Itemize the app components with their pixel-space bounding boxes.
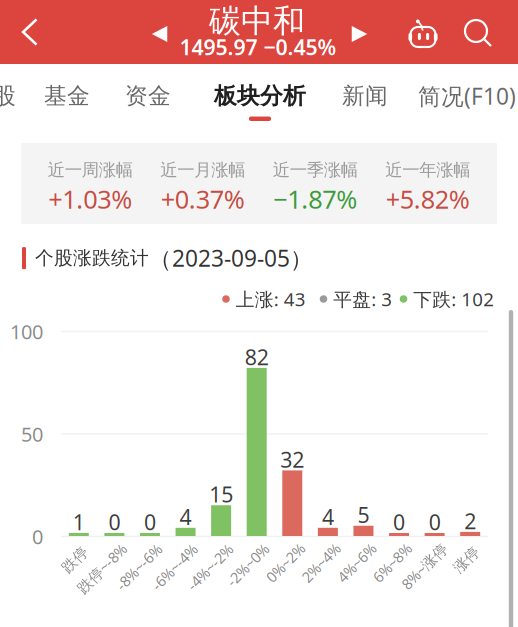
staticText: 下跌: 102 <box>413 287 494 311</box>
staticText: 32 <box>280 445 304 473</box>
staticText: 4%~6% <box>333 553 381 572</box>
staticText: 0 <box>144 508 156 536</box>
staticText: 1 <box>73 508 85 536</box>
staticText: 0 <box>108 508 120 536</box>
staticText: -2%~0% <box>221 555 274 575</box>
staticText: 4 <box>179 503 191 531</box>
button[interactable]: 新闻 <box>342 64 388 128</box>
staticText: 基金 <box>44 82 90 110</box>
button[interactable]: Assistant <box>400 1 446 65</box>
staticText: 简况(F10) <box>418 81 516 111</box>
staticText: 新闻 <box>342 82 388 110</box>
staticText: 0%~2% <box>261 553 309 572</box>
staticText: +5.82% <box>386 182 470 216</box>
staticText: 个股涨跌统计 <box>35 247 149 269</box>
staticText: 6%~8% <box>368 553 416 572</box>
staticText: 4 <box>322 503 334 531</box>
button[interactable]: Next stock <box>338 2 380 66</box>
button[interactable]: 简况(F10) <box>418 64 516 128</box>
staticText: 上涨: 43 <box>236 287 306 311</box>
staticText: 近一年涨幅 <box>385 159 470 181</box>
staticText: +0.37% <box>161 182 245 216</box>
staticText: 5 <box>357 501 369 529</box>
staticText: 近一周涨幅 <box>48 159 133 181</box>
button[interactable]: 板块分析 <box>214 64 306 128</box>
staticText: 个股 <box>0 82 16 110</box>
staticText: 2%~4% <box>297 553 345 572</box>
button[interactable]: Search <box>456 2 502 66</box>
staticText: 1495.97 −0.45% <box>179 33 336 61</box>
button[interactable]: 基金 <box>44 64 90 128</box>
button[interactable]: Back <box>4 0 56 64</box>
staticText: 资金 <box>125 82 171 110</box>
staticText: 82 <box>245 343 269 371</box>
staticText: 50 <box>21 421 43 447</box>
staticText: 2 <box>464 507 476 535</box>
button[interactable]: Previous stock <box>138 2 180 66</box>
staticText: 近一月涨幅 <box>160 159 245 181</box>
staticText: 涨停 <box>451 551 481 569</box>
staticText: 100 <box>10 318 43 345</box>
staticText: 0 <box>429 508 441 536</box>
staticText: 跌停 <box>60 551 90 569</box>
staticText: 15 <box>209 480 233 508</box>
staticText: 0 <box>393 508 405 536</box>
staticText: -8%~-6% <box>110 557 168 577</box>
button[interactable]: 资金 <box>125 64 171 128</box>
button[interactable]: 个股 <box>0 64 16 128</box>
staticText: 板块分析 <box>214 82 306 110</box>
staticText: 跌停~-8% <box>70 559 133 578</box>
staticText: 8%~涨停 <box>395 556 453 576</box>
staticText: -4%~-2% <box>181 557 239 577</box>
staticText: 0 <box>32 523 43 550</box>
staticText: 平盘: 3 <box>333 287 392 311</box>
staticText: +1.03% <box>48 182 132 216</box>
staticText: 碳中和 <box>209 1 305 41</box>
staticText: −1.87% <box>273 182 357 216</box>
staticText: 近一季涨幅 <box>273 159 358 181</box>
staticText: -6%~-4% <box>145 557 203 577</box>
staticText: （2023-09-05） <box>149 243 313 273</box>
